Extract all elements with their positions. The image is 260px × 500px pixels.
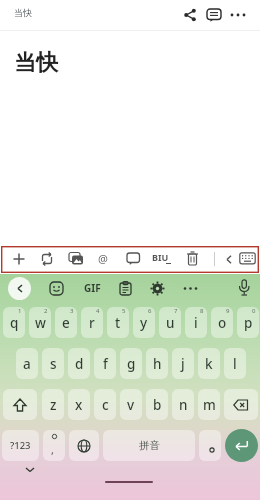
button[interactable]: [183, 286, 198, 291]
staticText: i: [194, 314, 198, 332]
button[interactable]: [126, 252, 141, 266]
staticText: g: [127, 355, 136, 373]
staticText: 当快: [14, 49, 58, 77]
button[interactable]: l: [224, 348, 246, 379]
staticText: ,: [51, 442, 54, 457]
staticText: 6: [148, 307, 152, 315]
staticText: 5: [122, 307, 126, 315]
button[interactable]: [224, 389, 258, 420]
button[interactable]: i: [185, 307, 207, 338]
button[interactable]: y: [133, 307, 155, 338]
button[interactable]: q: [3, 307, 25, 338]
staticText: q: [10, 314, 19, 332]
button[interactable]: [238, 279, 250, 297]
button[interactable]: [186, 251, 199, 266]
staticText: 4: [96, 307, 100, 315]
staticText: b: [153, 396, 162, 414]
staticText: k: [205, 355, 213, 373]
button[interactable]: @: [98, 251, 108, 266]
staticText: u: [166, 314, 175, 332]
button[interactable]: o: [211, 307, 233, 338]
button[interactable]: h: [146, 348, 168, 379]
button[interactable]: [206, 8, 222, 22]
staticText: m: [203, 396, 216, 414]
staticText: 拼音: [139, 439, 160, 452]
staticText: w: [35, 314, 46, 332]
button[interactable]: d: [68, 348, 90, 379]
staticText: a: [23, 355, 31, 373]
button[interactable]: GIF: [84, 281, 101, 295]
button[interactable]: f: [94, 348, 116, 379]
staticText: d: [75, 355, 84, 373]
staticText: r: [89, 314, 95, 332]
button[interactable]: c: [94, 389, 116, 420]
staticText: 当快: [14, 7, 32, 18]
staticText: 2: [44, 307, 48, 315]
staticText: 9: [226, 307, 230, 315]
staticText: v: [127, 396, 135, 414]
staticText: t: [115, 314, 121, 332]
button[interactable]: ?123: [2, 430, 39, 461]
staticText: z: [50, 396, 57, 414]
button[interactable]: [239, 252, 256, 265]
button[interactable]: u: [159, 307, 181, 338]
button[interactable]: ,: [43, 430, 65, 461]
button[interactable]: [49, 281, 64, 296]
staticText: e: [62, 314, 70, 332]
staticText: 1: [18, 307, 22, 315]
staticText: h: [153, 355, 162, 373]
button[interactable]: e: [55, 307, 77, 338]
staticText: l: [233, 355, 237, 373]
button[interactable]: [230, 12, 246, 18]
button[interactable]: [8, 277, 31, 300]
button[interactable]: r: [81, 307, 103, 338]
button[interactable]: [40, 252, 54, 266]
staticText: j: [181, 355, 185, 373]
button[interactable]: a: [16, 348, 38, 379]
staticText: 3: [70, 307, 74, 315]
button[interactable]: g: [120, 348, 142, 379]
button[interactable]: [199, 430, 221, 461]
button[interactable]: m: [198, 389, 220, 420]
button[interactable]: BIU: [152, 251, 169, 263]
button[interactable]: 拼音: [103, 430, 195, 461]
button[interactable]: [119, 281, 132, 296]
staticText: p: [244, 314, 253, 332]
staticText: 7: [174, 307, 178, 315]
staticText: c: [102, 396, 109, 414]
staticText: ?123: [10, 439, 31, 452]
button[interactable]: z: [42, 389, 64, 420]
button[interactable]: x: [68, 389, 90, 420]
button[interactable]: t: [107, 307, 129, 338]
button[interactable]: s: [42, 348, 64, 379]
staticText: n: [179, 396, 188, 414]
button[interactable]: [3, 389, 37, 420]
button[interactable]: n: [172, 389, 194, 420]
button[interactable]: j: [172, 348, 194, 379]
button[interactable]: [12, 252, 26, 266]
staticText: 8: [200, 307, 204, 315]
button[interactable]: k: [198, 348, 220, 379]
button[interactable]: [225, 429, 258, 462]
button[interactable]: [150, 281, 165, 296]
staticText: y: [140, 314, 148, 332]
button[interactable]: [183, 8, 197, 22]
button[interactable]: [69, 430, 99, 461]
button[interactable]: [68, 251, 84, 266]
button[interactable]: b: [146, 389, 168, 420]
staticText: BIU: [152, 251, 169, 263]
button[interactable]: v: [120, 389, 142, 420]
staticText: x: [75, 396, 83, 414]
staticText: 0: [252, 307, 256, 315]
staticText: o: [218, 314, 227, 332]
button[interactable]: w: [29, 307, 51, 338]
button[interactable]: p: [237, 307, 259, 338]
staticText: GIF: [84, 281, 101, 295]
button[interactable]: [225, 255, 233, 264]
staticText: f: [103, 355, 108, 373]
staticText: s: [50, 355, 57, 373]
button[interactable]: [25, 467, 35, 473]
